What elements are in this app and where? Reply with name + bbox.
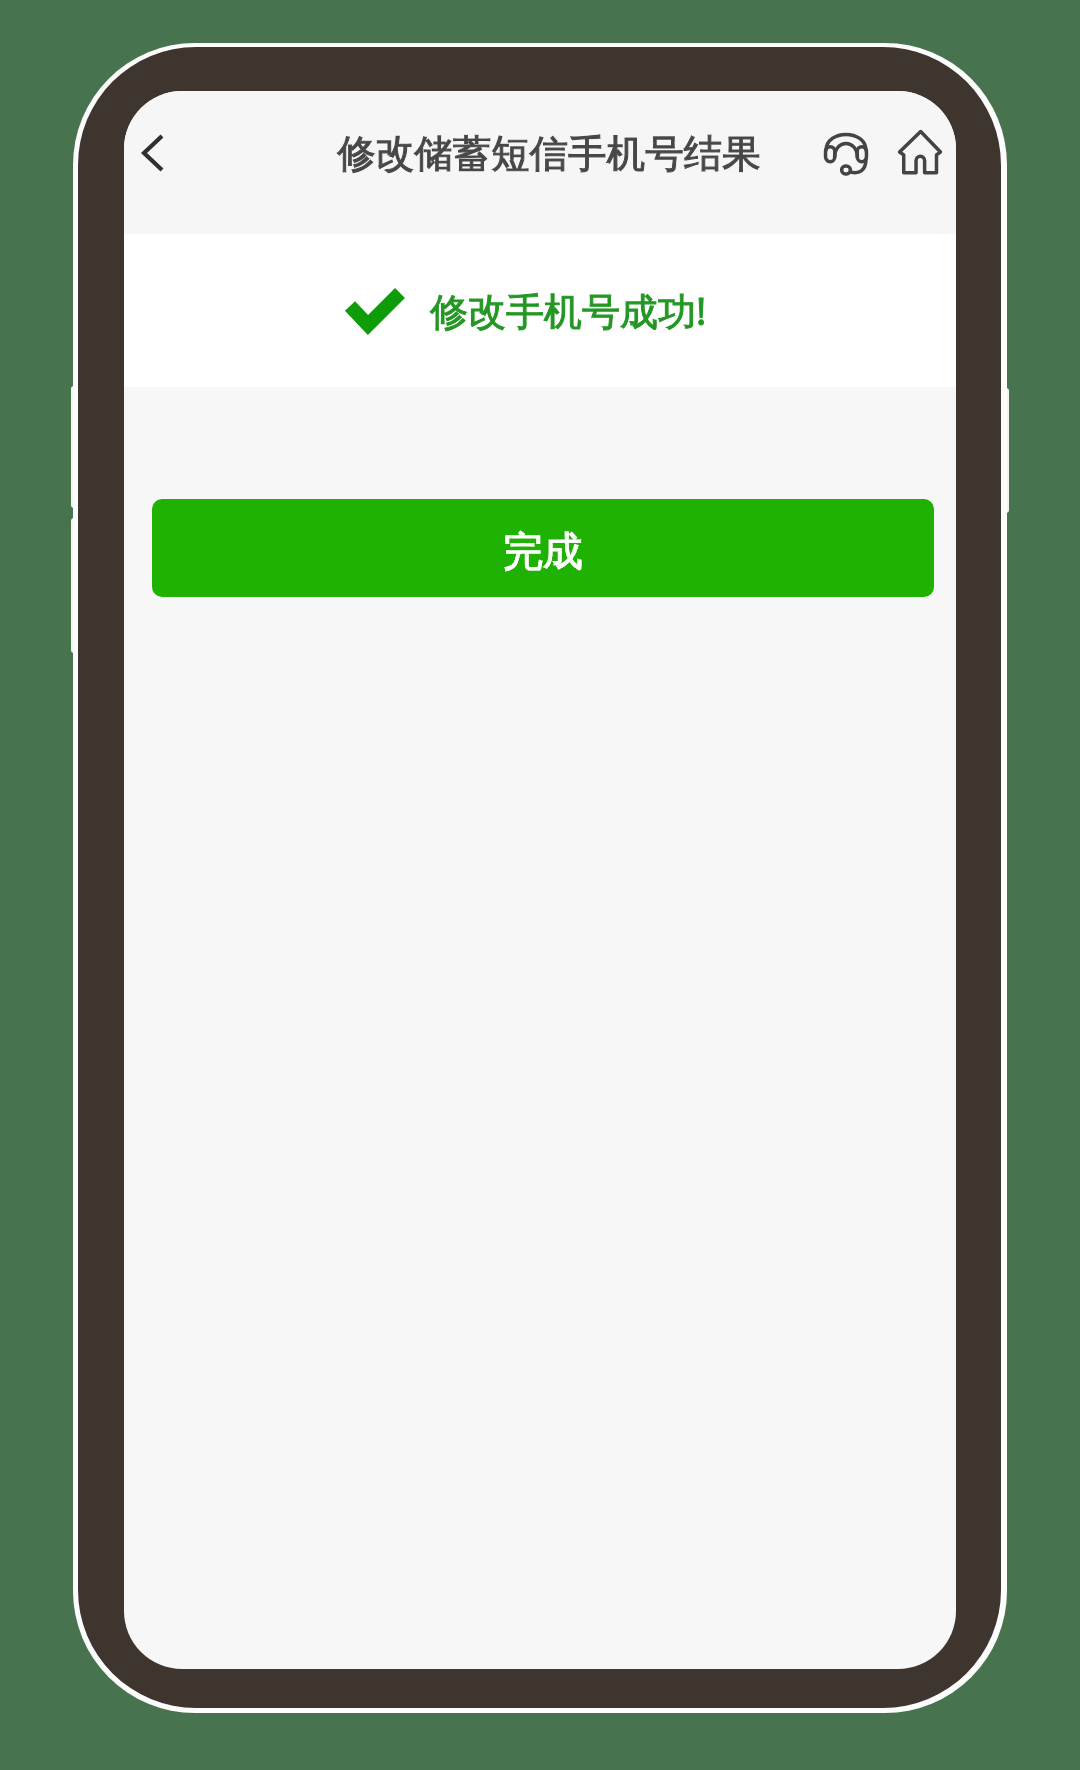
staticText: 修改手机号成功! [430, 284, 707, 336]
staticText: 完成 [503, 526, 583, 576]
button[interactable]: Back [126, 107, 180, 199]
staticText: 修改手机号成功! [430, 284, 707, 336]
button[interactable]: Customer service [802, 108, 890, 196]
button[interactable]: 完成 [152, 499, 934, 597]
staticText: 修改储蓄短信手机号结果 [337, 130, 761, 179]
button[interactable]: Home [876, 108, 956, 196]
staticText: 修改储蓄短信手机号结果 [337, 130, 761, 179]
staticText: 完成 [503, 526, 583, 576]
